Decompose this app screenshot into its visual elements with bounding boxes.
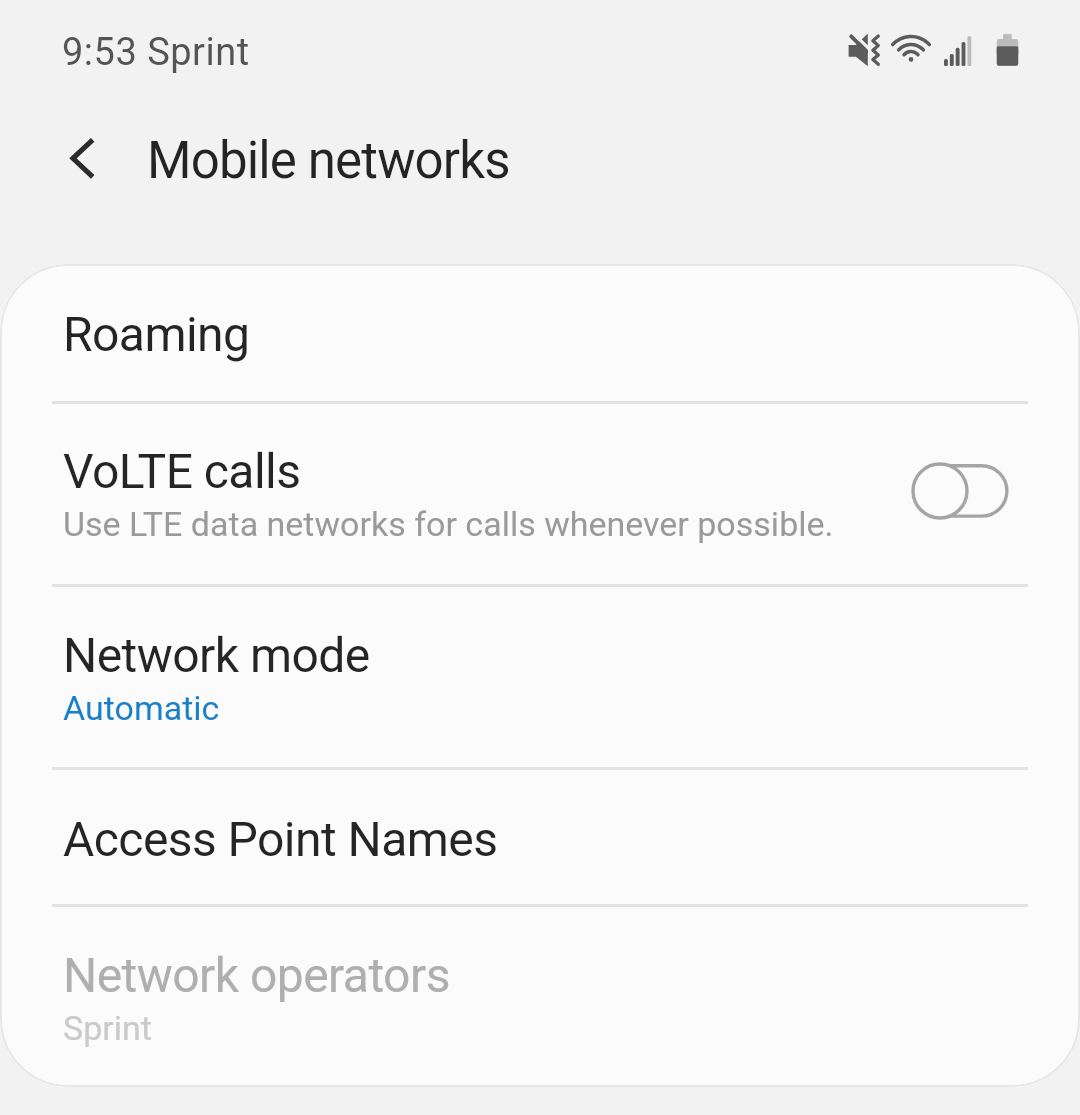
button[interactable]: Roaming — [0, 264, 1080, 402]
button[interactable]: VoLTE calls — [0, 402, 1080, 585]
staticText: Mobile networks — [147, 131, 510, 191]
staticText: Access Point Names — [63, 811, 498, 867]
staticText: Sprint — [63, 1008, 152, 1048]
staticText: Use LTE data networks for calls whenever… — [63, 504, 834, 544]
button[interactable]: Access Point Names — [0, 769, 1080, 906]
staticText: Network operators — [63, 947, 450, 1003]
button[interactable]: Navigate up — [34, 102, 132, 200]
staticText: Automatic — [63, 688, 220, 728]
staticText: VoLTE calls — [63, 443, 301, 499]
staticText: Network mode — [63, 627, 370, 683]
staticText: 9:53 Sprint — [62, 30, 250, 75]
button[interactable]: VoLTE calls switch, off — [900, 402, 1024, 585]
button[interactable]: Network operators — [0, 906, 1080, 1087]
button[interactable]: Network mode — [0, 586, 1080, 769]
staticText: Roaming — [63, 306, 250, 362]
